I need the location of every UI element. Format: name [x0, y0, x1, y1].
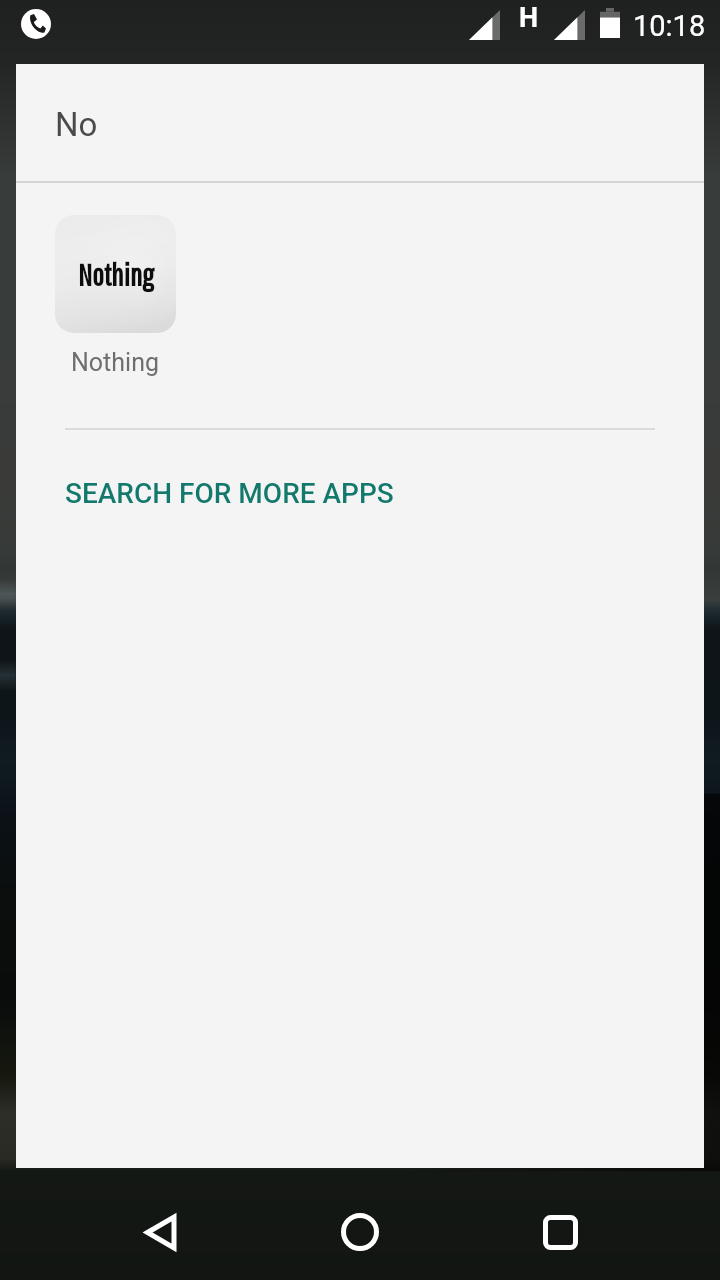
staticText: Nothing	[71, 348, 159, 377]
button[interactable]: Back	[112, 1176, 208, 1280]
button[interactable]: Recent apps	[512, 1176, 608, 1280]
staticText: Nothing	[78, 256, 154, 292]
other: Call in progress	[21, 9, 51, 39]
button[interactable]: Home	[312, 1176, 408, 1280]
staticText: 10:18	[633, 9, 706, 43]
button[interactable]: Nothing	[39, 215, 191, 377]
staticText: H	[519, 2, 539, 34]
button[interactable]: SEARCH FOR MORE APPS	[16, 449, 704, 537]
staticText: No	[55, 105, 98, 144]
staticText: SEARCH FOR MORE APPS	[65, 477, 394, 510]
